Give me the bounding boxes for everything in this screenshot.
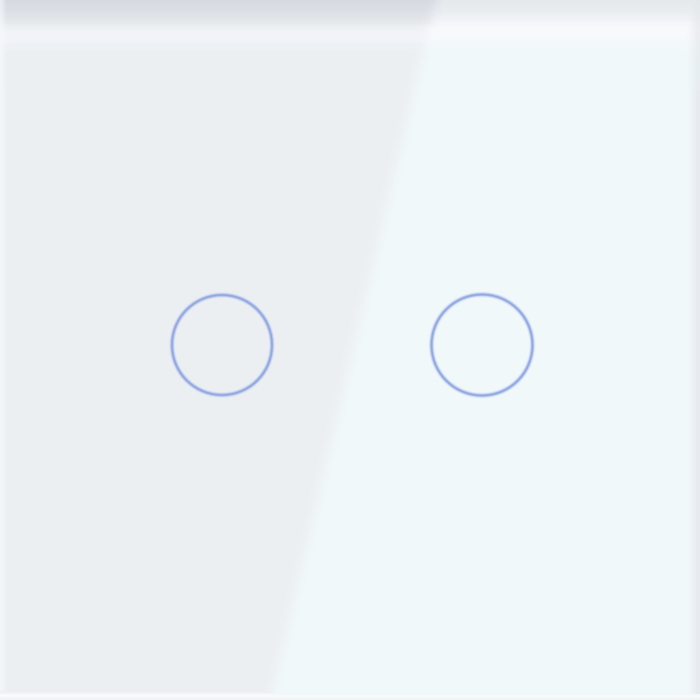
button[interactable]: Left switch xyxy=(144,267,300,423)
button[interactable]: Right switch xyxy=(403,266,560,423)
